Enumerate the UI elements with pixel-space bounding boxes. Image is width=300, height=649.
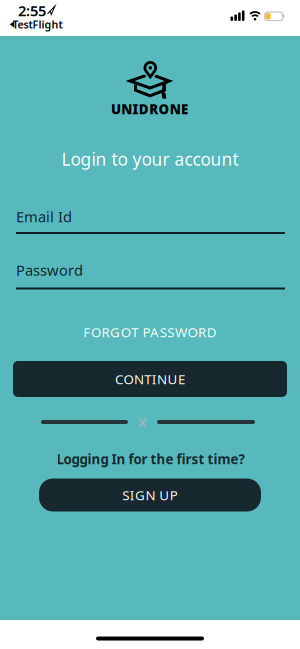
staticText: TestFlight: [12, 17, 62, 31]
button[interactable]: SIGN UP: [39, 478, 261, 511]
staticText: UNIDRONE: [111, 100, 188, 118]
staticText: Login to your account: [61, 147, 238, 170]
staticText: 2:55: [18, 1, 46, 20]
staticText: SIGN UP: [122, 486, 178, 504]
button[interactable]: Password: [16, 256, 285, 290]
staticText: Email Id: [16, 207, 72, 226]
staticText: x: [138, 411, 146, 431]
button[interactable]: Email Id: [16, 204, 285, 234]
staticText: CONTINUE: [115, 370, 185, 388]
button[interactable]: FORGOT PASSWORD: [83, 323, 217, 341]
staticText: Password: [16, 260, 83, 280]
staticText: Logging In for the first time?: [56, 450, 244, 468]
staticText: FORGOT PASSWORD: [83, 323, 217, 341]
button[interactable]: CONTINUE: [13, 361, 287, 397]
